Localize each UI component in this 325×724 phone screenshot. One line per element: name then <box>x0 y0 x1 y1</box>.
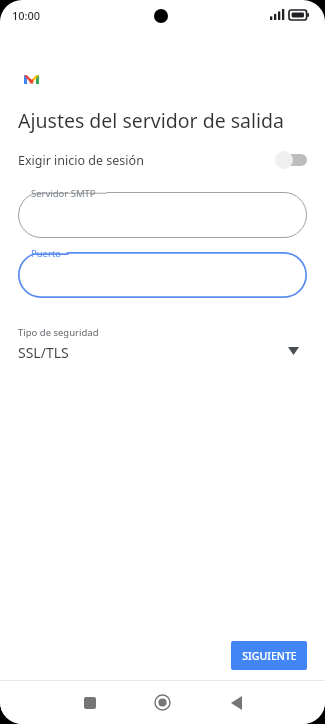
staticText: SSL/TLS <box>18 343 69 362</box>
staticText: 10:00 <box>12 8 41 23</box>
staticText: SIGUIENTE <box>242 649 297 663</box>
button[interactable]: Recents <box>62 681 118 724</box>
button[interactable]: Puerto <box>18 252 307 298</box>
button[interactable]: SIGUIENTE <box>231 641 307 670</box>
staticText: Puerto <box>31 247 62 260</box>
staticText: Servidor SMTP <box>31 187 96 200</box>
button[interactable]: Home <box>134 681 190 724</box>
staticText: Exigir inicio de sesión <box>18 152 144 169</box>
button[interactable]: Exigir inicio de sesión <box>275 150 309 170</box>
button[interactable]: Back <box>208 681 264 724</box>
button[interactable]: Tipo de seguridad <box>0 322 325 370</box>
staticText: Tipo de seguridad <box>18 326 99 339</box>
button[interactable]: Servidor SMTP <box>18 192 307 238</box>
button[interactable]: Exigir inicio de sesión <box>0 144 325 176</box>
staticText: Ajustes del servidor de salida <box>18 107 284 134</box>
